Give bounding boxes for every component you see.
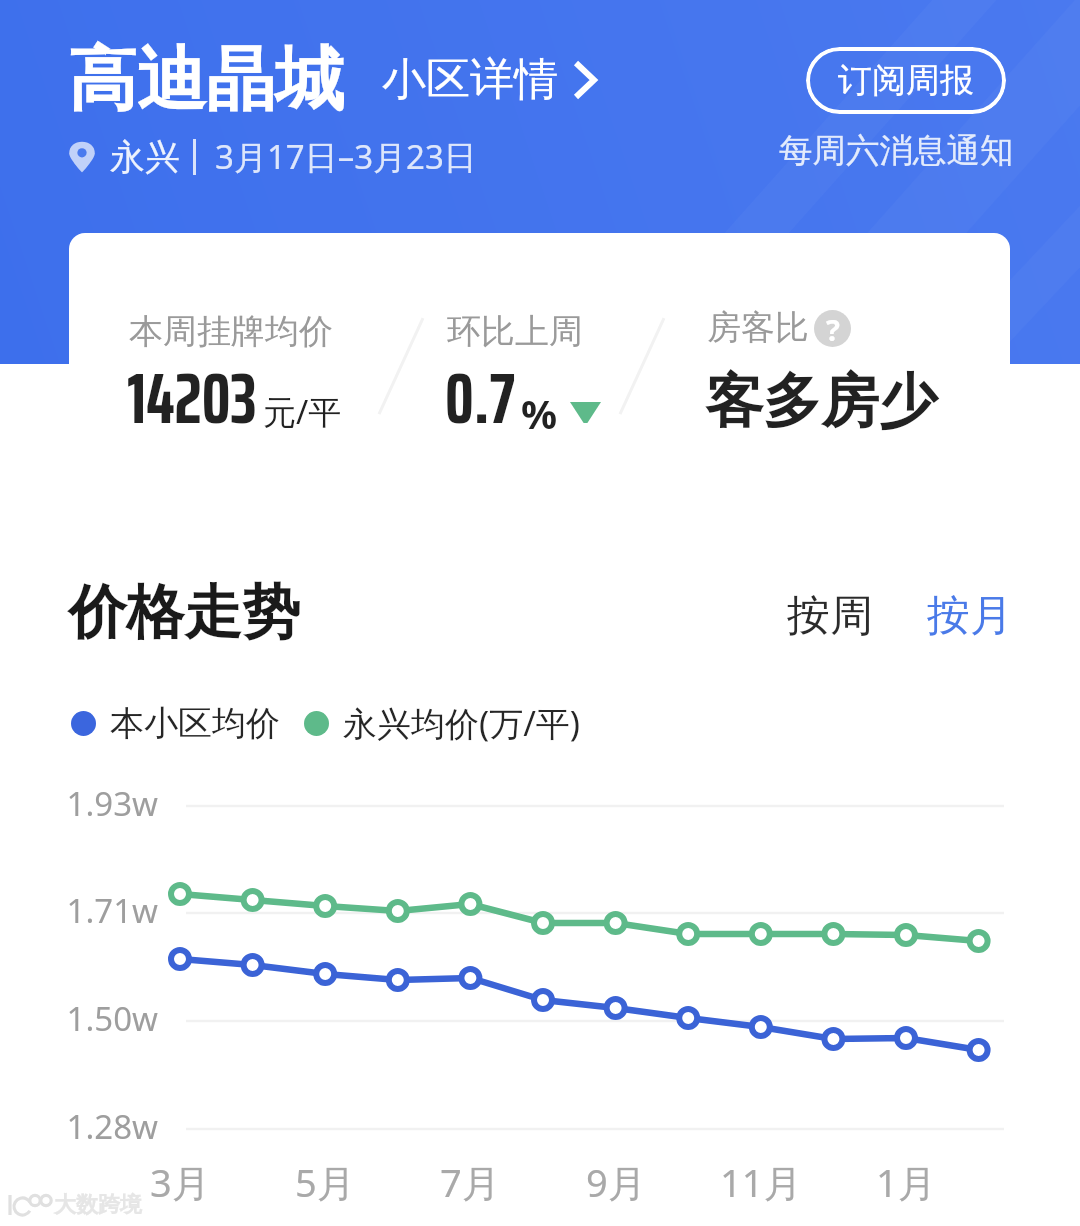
staticText: 1月 bbox=[876, 1156, 936, 1208]
staticText: 环比上周 bbox=[447, 310, 583, 353]
staticText: 按周 bbox=[787, 589, 873, 643]
button[interactable]: 订阅周报 bbox=[806, 47, 1006, 114]
staticText: 永兴 bbox=[110, 135, 180, 179]
staticText: 7月 bbox=[440, 1156, 500, 1208]
staticText: 11月 bbox=[720, 1156, 802, 1208]
staticText: 高迪晶城 bbox=[68, 37, 344, 124]
staticText: 3月 bbox=[150, 1156, 210, 1208]
staticText: 客多房少 bbox=[705, 365, 937, 438]
staticText: ? bbox=[826, 310, 840, 347]
button[interactable]: 房客比说明 bbox=[814, 310, 851, 347]
staticText: 元/平 bbox=[263, 389, 342, 434]
staticText: 1.71w bbox=[0, 888, 158, 933]
button[interactable]: 按月 bbox=[927, 589, 1013, 643]
staticText: 订阅周报 bbox=[838, 59, 974, 102]
staticText: 永兴均价(万/平) bbox=[343, 700, 581, 746]
staticText: 1.93w bbox=[0, 781, 158, 826]
staticText: 每周六消息通知 bbox=[779, 130, 1014, 172]
staticText: 房客比 bbox=[707, 306, 809, 349]
staticText: % bbox=[521, 386, 558, 440]
staticText: 3月17日–3月23日 bbox=[215, 134, 477, 179]
button[interactable]: 小区详情 bbox=[382, 52, 597, 107]
staticText: 按月 bbox=[927, 589, 1013, 643]
staticText: 0.7 bbox=[445, 341, 515, 454]
staticText: 14203 bbox=[127, 341, 257, 454]
staticText: 本小区均价 bbox=[110, 702, 280, 745]
staticText: 5月 bbox=[295, 1156, 355, 1208]
staticText: 1.50w bbox=[0, 996, 158, 1041]
staticText: 9月 bbox=[586, 1156, 646, 1208]
button[interactable]: 按周 bbox=[787, 589, 873, 643]
staticText: 小区详情 bbox=[382, 52, 558, 107]
staticText: 大数跨境 bbox=[54, 1191, 142, 1219]
staticText: 本周挂牌均价 bbox=[129, 310, 333, 353]
staticText: 1.28w bbox=[0, 1104, 158, 1149]
staticText: 价格走势 bbox=[68, 576, 300, 649]
